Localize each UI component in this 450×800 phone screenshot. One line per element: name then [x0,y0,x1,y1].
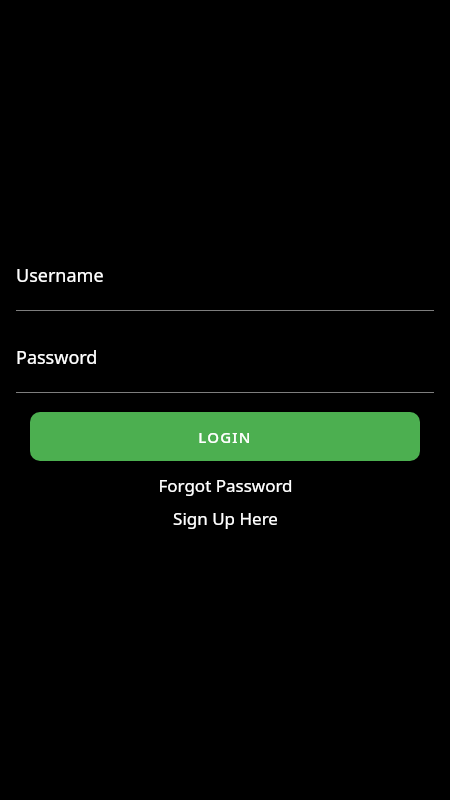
button[interactable]: Username [16,258,434,292]
staticText: Password [16,345,98,370]
staticText: Forgot Password [158,474,293,497]
button[interactable]: LOGIN [30,412,420,461]
staticText: LOGIN [198,427,252,447]
staticText: Username [16,263,104,288]
staticText: Sign Up Here [173,507,278,530]
button[interactable]: Forgot Password [0,470,450,500]
button[interactable]: Password [16,340,434,374]
button[interactable]: Sign Up Here [0,503,450,533]
